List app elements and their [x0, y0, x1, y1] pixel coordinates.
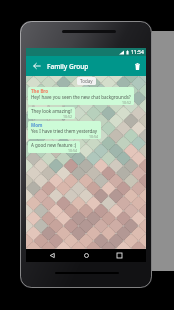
staticText: Hey! have you seen the new chat backgrou… [31, 94, 131, 100]
staticText: 10:52 [122, 100, 131, 105]
button[interactable]: Back [26, 56, 47, 76]
staticText: Yes I have tried them yesterday [31, 128, 98, 134]
staticText: 11:54 [131, 49, 144, 56]
staticText: 10:54 [89, 134, 98, 139]
button[interactable]: Back [46, 249, 59, 262]
staticText: The Bro [31, 88, 49, 94]
button[interactable]: Mom [28, 121, 101, 139]
button[interactable]: Recents [113, 249, 126, 262]
button[interactable]: Delete [128, 56, 146, 76]
staticText: A good new feature :) [31, 142, 77, 148]
button[interactable]: Home [80, 249, 93, 262]
staticText: They look amazing! [31, 108, 72, 114]
button[interactable]: The Bro [28, 87, 134, 105]
staticText: Today [80, 78, 93, 84]
button[interactable]: A good new feature :) [28, 141, 80, 153]
staticText: 10:52 [63, 114, 72, 119]
staticText: Family Group [47, 62, 89, 71]
button[interactable]: They look amazing! [28, 107, 75, 119]
staticText: Mom [31, 122, 43, 128]
staticText: 10:54 [68, 148, 77, 153]
